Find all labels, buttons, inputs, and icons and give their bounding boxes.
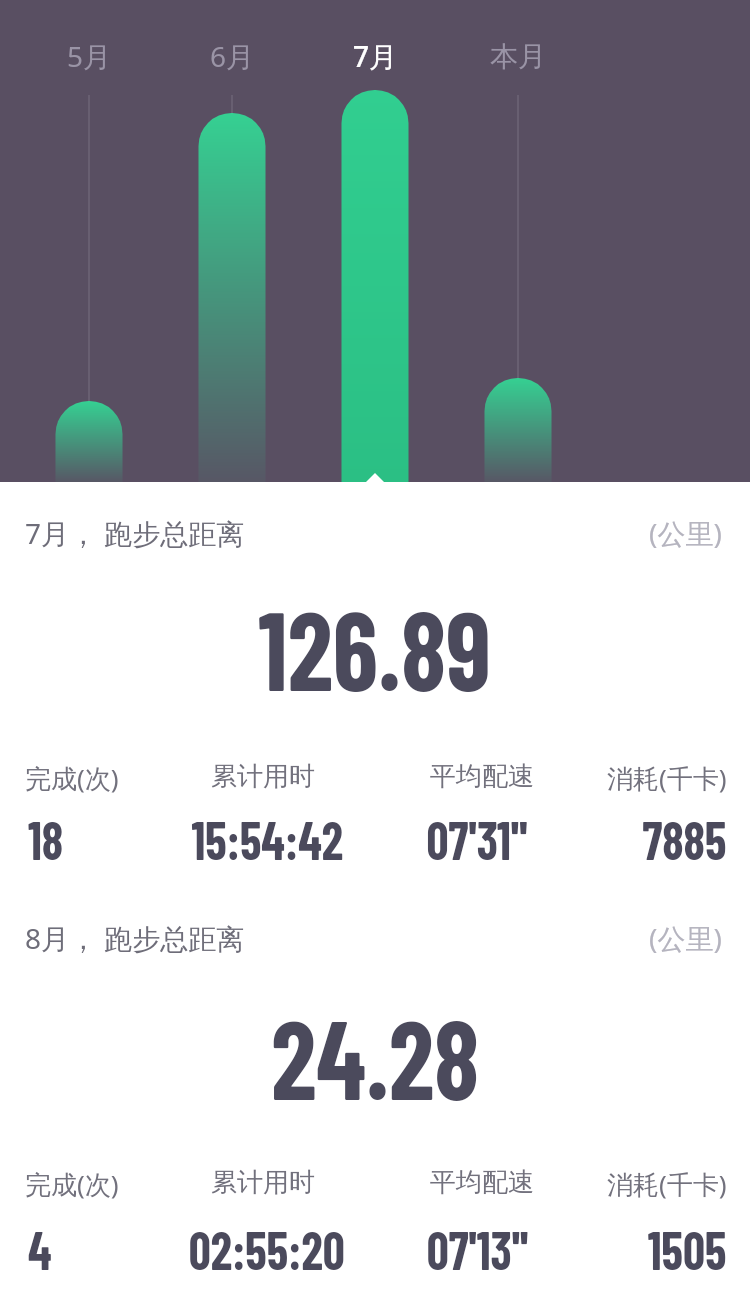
staticText: 1505	[648, 1216, 727, 1281]
staticText: 完成(次)	[25, 760, 119, 796]
button[interactable]: 本月	[458, 30, 578, 82]
staticText: 累计用时	[211, 760, 315, 793]
staticText: 126.89	[258, 581, 492, 713]
staticText: 消耗(千卡)	[607, 1166, 727, 1202]
staticText: 累计用时	[211, 1166, 315, 1199]
staticText: 平均配速	[430, 760, 534, 793]
staticText: 完成(次)	[25, 1166, 119, 1202]
staticText: 消耗(千卡)	[607, 760, 727, 796]
staticText: 07'13''	[427, 1216, 528, 1281]
staticText: 8月， 跑步总距离	[25, 919, 245, 957]
staticText: 7月	[353, 37, 398, 75]
button[interactable]: 6月	[172, 30, 292, 82]
staticText: 24.28	[271, 990, 480, 1122]
staticText: (公里)	[649, 514, 722, 552]
staticText: 平均配速	[430, 1166, 534, 1199]
staticText: 4	[28, 1216, 52, 1281]
staticText: 6月	[210, 37, 255, 75]
staticText: 18	[28, 806, 64, 871]
staticText: 5月	[67, 37, 112, 75]
staticText: 07'31''	[427, 806, 527, 871]
staticText: 02:55:20	[189, 1216, 345, 1281]
button[interactable]: 5月	[29, 30, 149, 82]
staticText: 7885	[642, 806, 727, 871]
staticText: (公里)	[649, 919, 722, 957]
staticText: 本月	[490, 39, 546, 74]
button[interactable]: 7月	[315, 30, 435, 82]
staticText: 7月， 跑步总距离	[25, 514, 245, 552]
staticText: 15:54:42	[191, 806, 344, 871]
